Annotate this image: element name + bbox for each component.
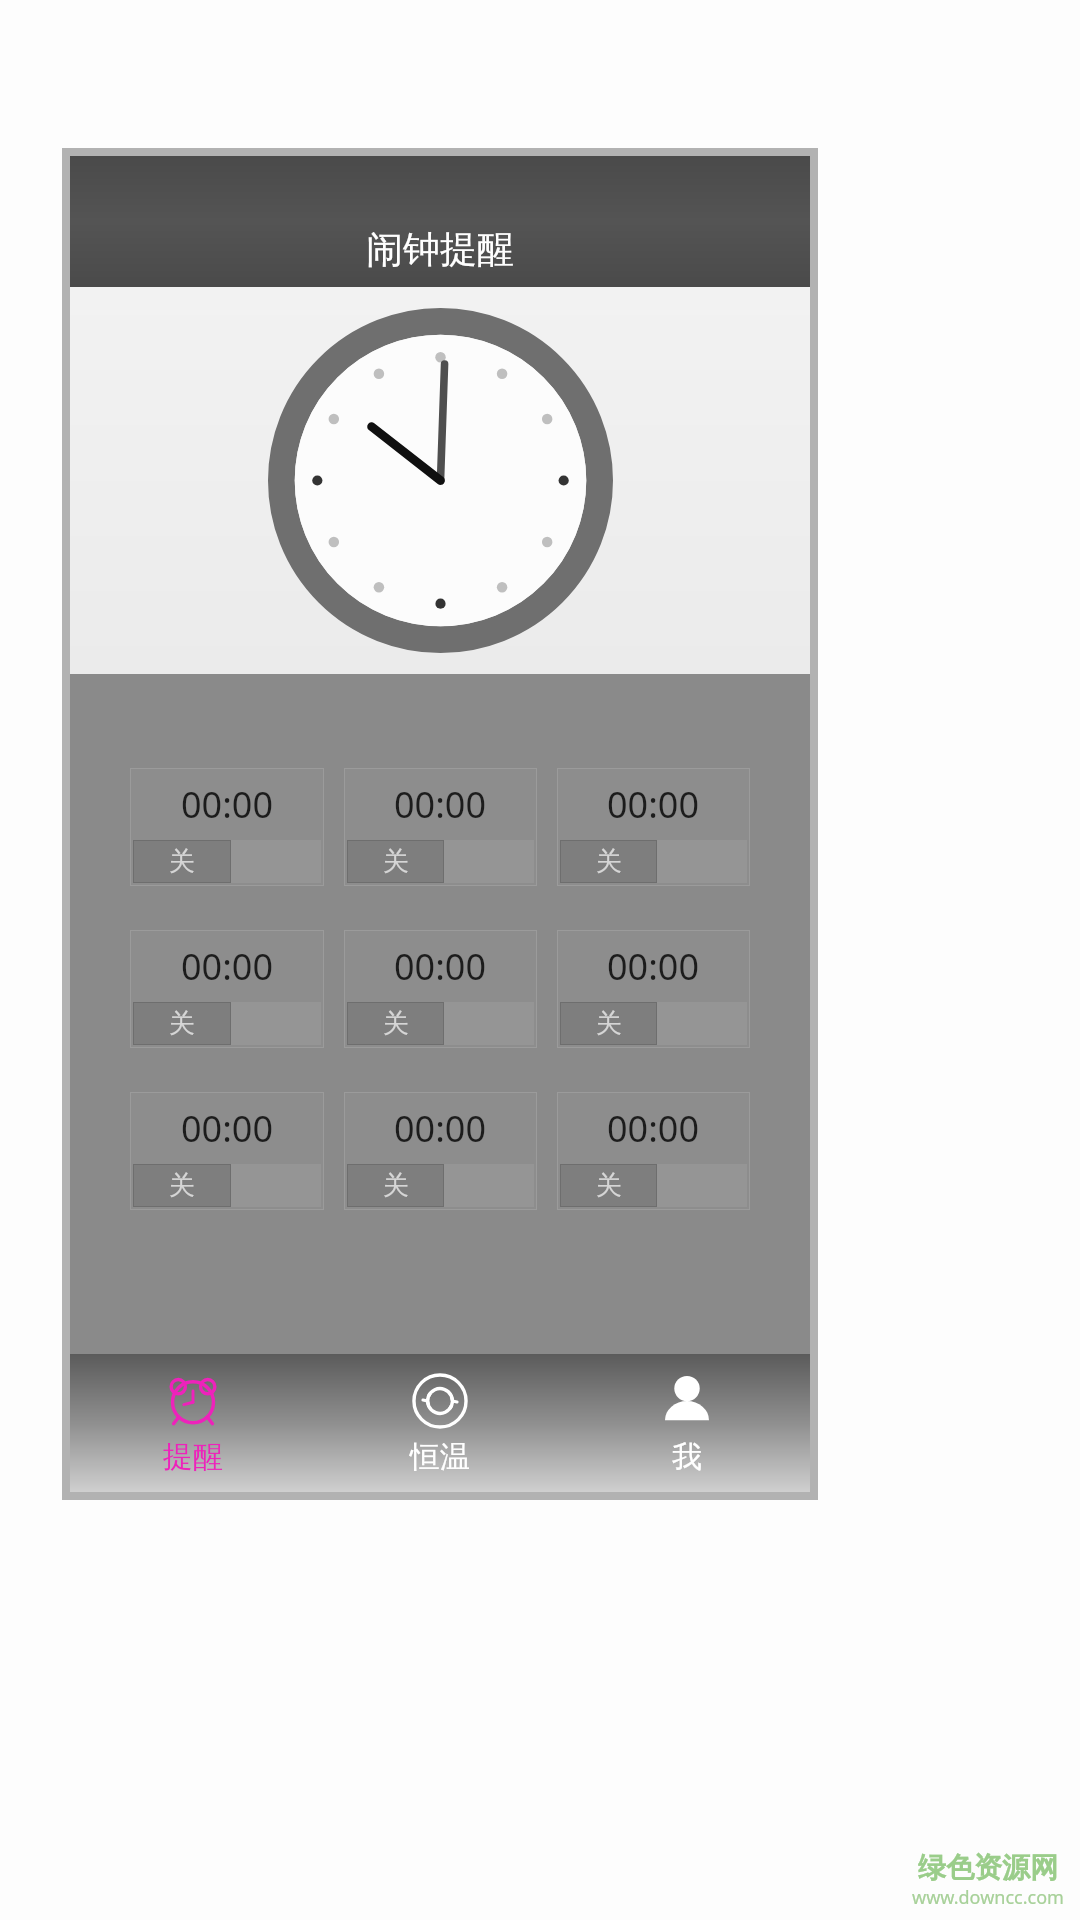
staticText: 我 xyxy=(672,1438,702,1476)
staticText: 关 xyxy=(169,1169,195,1202)
button[interactable]: 00:00 xyxy=(557,930,750,1048)
button[interactable]: 00:00 xyxy=(557,768,750,886)
staticText: 关 xyxy=(596,1007,622,1040)
button[interactable]: 我 xyxy=(563,1354,810,1492)
staticText: www.downcc.com xyxy=(912,1885,1064,1910)
staticText: 00:00 xyxy=(394,780,487,829)
staticText: 00:00 xyxy=(394,942,487,991)
staticText: 绿色资源网 xyxy=(918,1850,1058,1885)
staticText: 关 xyxy=(383,1169,409,1202)
staticText: 00:00 xyxy=(394,1104,487,1153)
button[interactable]: 00:00 xyxy=(344,930,537,1048)
button[interactable]: 00:00 xyxy=(344,768,537,886)
button[interactable]: 00:00 xyxy=(130,1092,324,1210)
staticText: 关 xyxy=(596,845,622,878)
button[interactable]: 00:00 xyxy=(130,768,324,886)
staticText: 恒温 xyxy=(410,1438,470,1476)
staticText: 00:00 xyxy=(607,942,700,991)
staticText: 00:00 xyxy=(181,780,274,829)
staticText: 关 xyxy=(169,845,195,878)
staticText: 关 xyxy=(596,1169,622,1202)
button[interactable]: 00:00 xyxy=(557,1092,750,1210)
staticText: 00:00 xyxy=(181,1104,274,1153)
staticText: 00:00 xyxy=(607,780,700,829)
staticText: 00:00 xyxy=(607,1104,700,1153)
staticText: 提醒 xyxy=(163,1438,223,1476)
staticText: 闹钟提醒 xyxy=(366,226,514,273)
staticText: 关 xyxy=(383,845,409,878)
button[interactable]: 恒温 xyxy=(316,1354,563,1492)
staticText: 关 xyxy=(383,1007,409,1040)
staticText: 00:00 xyxy=(181,942,274,991)
button[interactable]: 00:00 xyxy=(344,1092,537,1210)
button[interactable]: 提醒 xyxy=(70,1354,316,1492)
staticText: 关 xyxy=(169,1007,195,1040)
button[interactable]: 00:00 xyxy=(130,930,324,1048)
